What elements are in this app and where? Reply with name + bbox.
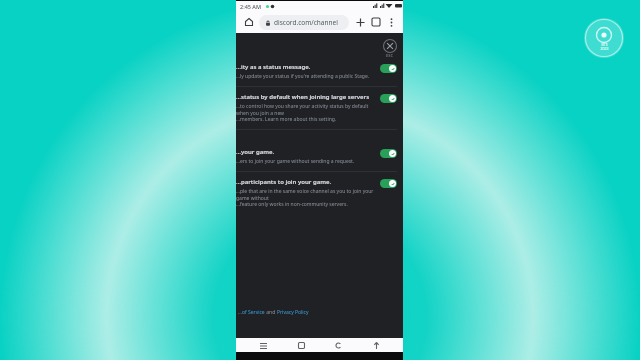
button[interactable]: More options: [384, 15, 398, 29]
staticText: …ity as a status message.: [236, 63, 311, 71]
button[interactable]: …ity as a status message.: [236, 57, 397, 82]
staticText: …ple that are in the same voice channel …: [236, 188, 374, 208]
button[interactable]: Share: [366, 338, 386, 352]
button[interactable]: Toggle: [380, 94, 397, 103]
button[interactable]: Home: [241, 14, 257, 30]
button[interactable]: Recents: [253, 338, 273, 352]
button[interactable]: Tabs: [368, 14, 384, 30]
staticText: discord.com/channel: [274, 18, 338, 27]
staticText: …to control how you share your activity …: [236, 103, 374, 123]
button[interactable]: Close: [381, 37, 399, 60]
button[interactable]: Home: [291, 338, 311, 352]
button[interactable]: …status by default when joining large se…: [236, 87, 397, 125]
staticText: and: [265, 309, 277, 316]
button[interactable]: discord.com/channel: [259, 15, 349, 30]
button[interactable]: Toggle: [380, 149, 397, 158]
staticText: …ers to join your game without sending a…: [236, 158, 355, 165]
staticText: …status by default when joining large se…: [236, 93, 370, 101]
staticText: …participants to join your game.: [236, 178, 332, 186]
staticText: ESC: [386, 53, 394, 58]
button[interactable]: Toggle: [380, 179, 397, 188]
button[interactable]: …your game.: [236, 142, 397, 167]
staticText: BTS 2023: [600, 42, 609, 51]
button[interactable]: …of Service: [238, 309, 265, 316]
staticText: 2:45 AM: [240, 3, 262, 10]
button[interactable]: …participants to join your game.: [236, 172, 397, 210]
button[interactable]: Toggle: [380, 64, 397, 73]
staticText: …ly update your status if you're attendi…: [236, 73, 370, 80]
button[interactable]: Privacy Policy: [277, 309, 309, 316]
button[interactable]: Back: [328, 338, 348, 352]
button[interactable]: New tab: [352, 14, 368, 30]
staticText: …your game.: [236, 148, 275, 156]
